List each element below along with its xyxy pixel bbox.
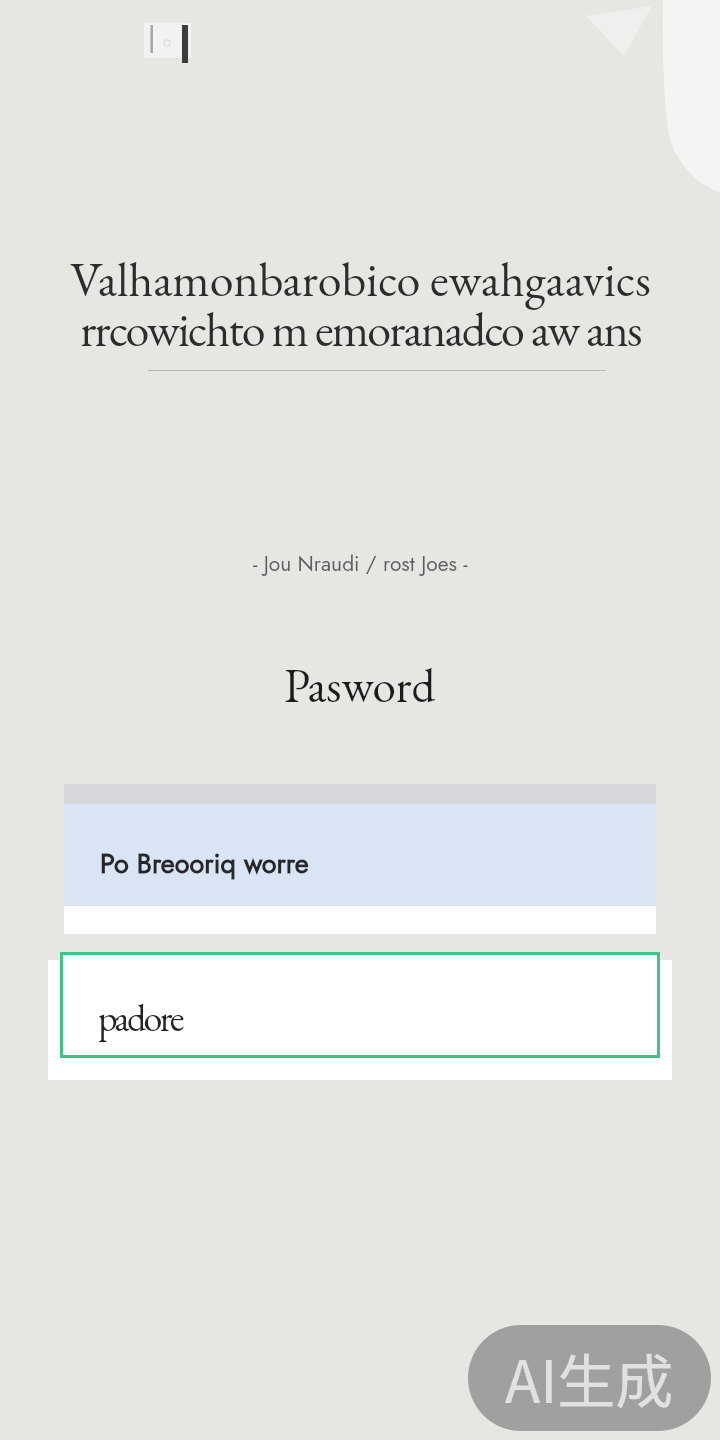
staticText: Po Breooriq worre <box>100 844 309 883</box>
staticText: rrcowichto m emoranadco aw ans <box>80 298 641 361</box>
button[interactable]: App logo <box>144 23 191 64</box>
staticText: Valhamonbarobico ewahgaavics <box>70 248 651 311</box>
button[interactable]: padore <box>60 952 660 1058</box>
staticText: - Jou Nraudi / rost Joes - <box>253 549 468 579</box>
staticText: AI生成 <box>505 1336 674 1420</box>
staticText: padore <box>98 993 183 1043</box>
staticText: Pasword <box>284 655 436 716</box>
button[interactable]: Po Breooriq worre <box>64 804 656 906</box>
